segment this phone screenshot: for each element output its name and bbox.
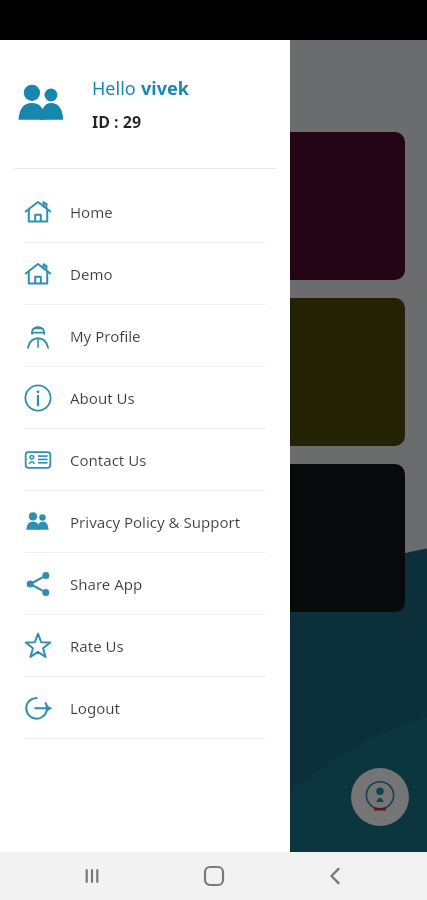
- button[interactable]: MCQ: [22, 464, 405, 612]
- button[interactable]: About Us: [0, 367, 290, 429]
- button[interactable]: Contact Us: [0, 429, 290, 491]
- button[interactable]: Home: [0, 181, 290, 243]
- staticText: Privacy Policy & Support: [70, 512, 241, 532]
- staticText: ID : 29: [92, 111, 142, 133]
- staticText: Contact Us: [70, 450, 147, 470]
- staticText: Rate Us: [70, 636, 124, 656]
- button[interactable]: Recents: [62, 852, 122, 900]
- button[interactable]: 1st Basic Nusring: [22, 298, 405, 446]
- button[interactable]: Demo: [0, 243, 290, 305]
- staticText: Logout: [70, 698, 120, 718]
- staticText: vivek: [141, 76, 189, 101]
- button[interactable]: Home: [184, 852, 244, 900]
- button[interactable]: Rate Us: [0, 615, 290, 677]
- staticText: About Us: [70, 388, 135, 408]
- staticText: ANM: [42, 202, 86, 228]
- button[interactable]: Logout: [0, 677, 290, 739]
- staticText: 1st Basic Nusring: [42, 368, 120, 417]
- button[interactable]: Open menu: [16, 48, 56, 88]
- button[interactable]: ANM: [22, 132, 405, 280]
- button[interactable]: My Profile: [0, 305, 290, 367]
- staticText: Share App: [70, 574, 143, 594]
- button[interactable]: Privacy Policy & Support: [0, 491, 290, 553]
- button[interactable]: Share App: [0, 553, 290, 615]
- button[interactable]: App logo: [351, 768, 409, 826]
- staticText: Demo: [70, 264, 113, 284]
- staticText: Hello: [92, 76, 141, 101]
- staticText: Home: [70, 202, 113, 222]
- staticText: My Profile: [70, 326, 141, 346]
- button[interactable]: Back: [305, 852, 365, 900]
